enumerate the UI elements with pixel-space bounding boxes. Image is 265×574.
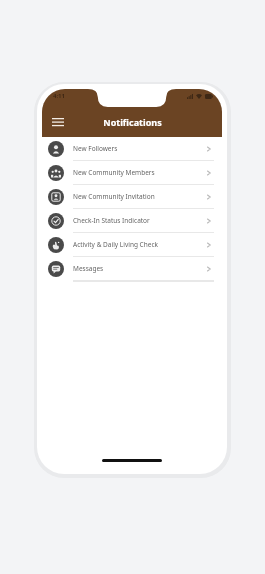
button[interactable]: Open navigation menu <box>48 112 68 132</box>
staticText: New Followers <box>73 144 118 153</box>
staticText: Messages <box>73 264 104 273</box>
staticText: New Community Members <box>73 168 155 177</box>
button[interactable]: Activity & Daily Living Check <box>42 233 222 256</box>
button[interactable]: New Community Members <box>42 161 222 184</box>
staticText: Check-In Status Indicator <box>73 216 150 225</box>
staticText: Notifications <box>103 116 162 128</box>
staticText: 4:11 <box>53 92 65 100</box>
button[interactable]: New Community Invitation <box>42 185 222 208</box>
button[interactable]: Messages <box>42 257 222 280</box>
staticText: Activity & Daily Living Check <box>73 240 158 249</box>
button[interactable]: Check-In Status Indicator <box>42 209 222 232</box>
button[interactable]: New Followers <box>42 137 222 160</box>
staticText: New Community Invitation <box>73 192 155 201</box>
